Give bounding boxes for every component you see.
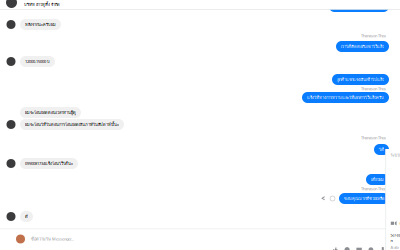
staticText: เดี๋ยวผม [371,176,384,183]
staticText: ผมจะโอนยอดตอนเวลาท่านผู้ดู [25,109,76,116]
staticText: ขอบคุณมากที่ช่วยเหลือ [344,195,384,202]
staticText: 0990081734แจ้งโอนไว้ได้นะ [25,160,73,167]
staticText: Auto [390,244,398,250]
staticText: Thanason Thos [361,33,386,38]
button[interactable]: Reply [320,195,326,201]
staticText: ส [399,220,400,226]
staticText: บริษัท ฮาวทูทิ้ง จำกัด [24,1,60,8]
staticText: ข้อความใน Messenger... [31,236,74,242]
button[interactable]: Composer tool [344,246,350,250]
button[interactable]: หลังจากนะครับผม [0,19,400,30]
staticText: 12000-15000 บ [25,58,50,65]
staticText: ระบบ [390,152,400,158]
button[interactable]: ดี [0,211,400,222]
button[interactable]: Composer tool [380,246,386,250]
staticText: Thanason Thos [361,186,386,191]
button[interactable]: React [330,196,335,201]
button[interactable]: Composer tool [368,246,374,250]
button[interactable]: ลูกค้าแจกแจงเงินเข้าไปแล้ว [0,74,400,85]
button[interactable]: เดี๋ยวผม [0,174,400,185]
button[interactable]: 0990081734แจ้งโอนไว้ได้นะ [0,158,400,169]
staticText: ดี [25,213,28,220]
staticText: เราได้ติดต่อกับเขาไว้แล้ว [341,43,384,50]
staticText: ได้ [379,146,384,153]
staticText: Screen [390,232,400,243]
button[interactable]: Composer tool [356,246,362,250]
button[interactable]: ได้ [0,144,400,155]
button[interactable]: ผมจะโอนให้ในตอนการโอนยอดเงินภาษีในสัปดาห… [0,119,400,130]
button[interactable]: ข้อความใน Messenger... [0,234,385,244]
button[interactable]: เราได้ติดต่อกับเขาไว้แล้ว [0,41,400,52]
button[interactable]: ผมจะโอนยอดตอนเวลาท่านผู้ดู [0,107,400,118]
button[interactable]: บริษัท ฮาวทูทิ้ง จำกัด [0,0,400,9]
staticText: Thanason Thos [361,135,386,140]
button[interactable]: แจ้งให้ทางการทราบและให้เอกสารไว้แล้วครับ [0,92,400,103]
staticText: หลังจากนะครับผม [25,21,56,28]
button[interactable]: 12000-15000 บ [0,56,400,67]
button[interactable]: Composer tool [332,246,338,250]
staticText: ลูกค้าแจกแจงเงินเข้าไปแล้ว [337,76,384,83]
button[interactable]: ขอบคุณมากที่ช่วยเหลือ [0,193,400,204]
staticText: ผมจะโอนให้ในตอนการโอนยอดเงินภาษีในสัปดาห… [25,121,119,128]
staticText: แจ้งให้ทางการทราบและให้เอกสารไว้แล้วครับ [307,94,384,101]
staticText: Thanason Thos [361,86,386,91]
